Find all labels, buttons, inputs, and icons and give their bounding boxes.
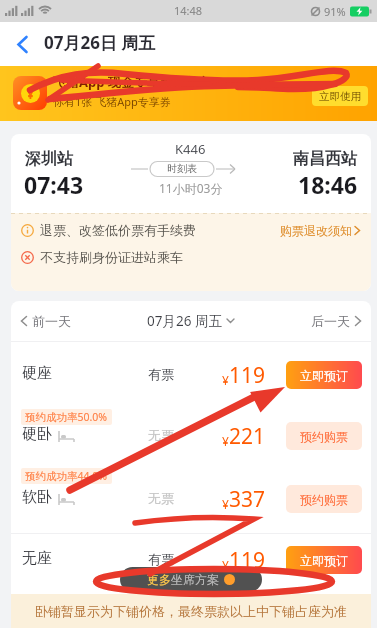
staticText: 卧铺暂显示为下铺价格，最终票款以上中下铺占座为准 bbox=[35, 603, 347, 619]
staticText: 立即使用 bbox=[319, 90, 361, 103]
button[interactable]: 无座 bbox=[11, 532, 371, 588]
staticText: ¥ bbox=[222, 557, 229, 573]
staticText: 硬座 bbox=[22, 364, 52, 383]
staticText: 07月26日 周五 bbox=[44, 31, 156, 54]
button[interactable]: 立即预订 bbox=[286, 546, 362, 574]
staticText: 更多 bbox=[147, 572, 171, 587]
staticText: 南昌西站 bbox=[293, 149, 357, 169]
staticText: 不支持刷身份证进站乘车 bbox=[40, 249, 183, 265]
button[interactable]: 硬卧 bbox=[11, 408, 371, 464]
staticText: 软卧 bbox=[22, 488, 52, 507]
staticText: K446 bbox=[175, 140, 206, 158]
staticText: 购票退改须知 bbox=[280, 223, 352, 238]
button[interactable]: 软卧 bbox=[11, 471, 371, 527]
staticText: 坐席方案 bbox=[171, 572, 219, 587]
button[interactable]: 退票、改签低价票有手续费 bbox=[21, 222, 361, 238]
staticText: 337 bbox=[229, 485, 266, 514]
staticText: 119 bbox=[229, 361, 266, 390]
staticText: 11小时03分 bbox=[159, 180, 223, 196]
button[interactable]: 时刻表 bbox=[131, 161, 249, 177]
staticText: 91% bbox=[324, 4, 346, 19]
staticText: 07:43 bbox=[24, 169, 84, 200]
button[interactable]: 硬座 bbox=[11, 347, 371, 403]
staticText: 预约购票 bbox=[300, 429, 348, 444]
staticText: 有票 bbox=[148, 366, 174, 382]
staticText: 有票 bbox=[148, 551, 174, 567]
staticText: 立即预订 bbox=[300, 553, 348, 568]
staticText: 飞猪App·现金专享购票红包 bbox=[53, 73, 213, 91]
staticText: 221 bbox=[229, 422, 266, 451]
staticText: 前一天 bbox=[32, 313, 71, 329]
staticText: 时刻表 bbox=[167, 162, 197, 175]
staticText: 119 bbox=[229, 546, 266, 575]
staticText: 预约购票 bbox=[300, 492, 348, 507]
staticText: 你有1张 飞猪App专享券 bbox=[53, 94, 171, 109]
staticText: 18:46 bbox=[298, 169, 358, 200]
staticText: 退票、改签低价票有手续费 bbox=[40, 222, 196, 238]
staticText: 14:48 bbox=[174, 3, 203, 18]
button[interactable]: 更多 bbox=[120, 567, 262, 592]
button[interactable]: ¥ bbox=[0, 66, 377, 121]
button[interactable]: 立即预订 bbox=[286, 361, 362, 389]
staticText: ¥ bbox=[222, 496, 229, 512]
staticText: 硬卧 bbox=[22, 425, 52, 444]
staticText: ¥ bbox=[222, 372, 229, 388]
staticText: 无票 bbox=[148, 427, 174, 443]
button[interactable]: 预约购票 bbox=[286, 422, 362, 450]
button[interactable]: 07月26 周五 bbox=[147, 312, 235, 330]
staticText: 无票 bbox=[148, 490, 174, 506]
staticText: 无座 bbox=[22, 549, 52, 568]
button[interactable]: 预约购票 bbox=[286, 485, 362, 513]
staticText: 07月26 周五 bbox=[147, 312, 222, 330]
staticText: ¥ bbox=[222, 433, 229, 449]
staticText: 预约成功率50.0% bbox=[25, 410, 108, 424]
button[interactable]: 立即使用 bbox=[312, 86, 368, 106]
staticText: 预约成功率44.0% bbox=[25, 469, 108, 483]
button[interactable]: 前一天 bbox=[20, 313, 71, 329]
staticText: 立即预订 bbox=[300, 368, 348, 383]
button[interactable]: 后一天 bbox=[311, 313, 362, 329]
staticText: 后一天 bbox=[311, 313, 350, 329]
button[interactable] bbox=[6, 28, 38, 60]
staticText: 深圳站 bbox=[25, 149, 73, 169]
staticText: ¥ bbox=[27, 86, 34, 102]
